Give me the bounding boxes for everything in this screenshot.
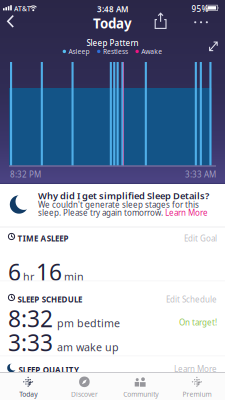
staticText: 95% — [191, 4, 208, 14]
staticText: Community — [123, 390, 158, 399]
button[interactable] — [0, 0, 22, 34]
button[interactable]: SLEEP QUALITY — [0, 361, 225, 375]
button[interactable] — [0, 0, 225, 34]
staticText: 8:32 — [8, 303, 53, 334]
staticText: Why did I get simplified Sleep Details? — [38, 189, 209, 202]
staticText: Awake — [141, 47, 162, 56]
staticText: sleep. Please try again tomorrow. — [38, 207, 165, 218]
button[interactable]: Edit Goal — [184, 233, 217, 244]
staticText: Sleep Pattern — [86, 37, 138, 48]
staticText: Discover — [71, 390, 98, 399]
button[interactable]: Why did I get simplified Sleep Details? — [0, 184, 225, 226]
staticText: Restless — [103, 47, 128, 56]
staticText: On target! — [179, 317, 217, 328]
staticText: Learn More — [165, 207, 208, 218]
staticText: We couldn't generate sleep stages for th… — [38, 199, 199, 210]
button[interactable]: Discover — [56, 373, 112, 400]
staticText: 6 — [8, 257, 21, 287]
staticText: SLEEP SCHEDULE — [17, 294, 82, 305]
staticText: 3:48 AM — [97, 4, 128, 14]
staticText: SLEEP QUALITY — [18, 364, 79, 375]
button[interactable] — [0, 0, 225, 60]
staticText: Edit Schedule — [166, 294, 217, 305]
staticText: am wake up — [57, 340, 119, 354]
staticText: 8:32 PM — [10, 169, 41, 180]
staticText: Learn More — [174, 363, 217, 374]
staticText: Asleep — [69, 47, 90, 56]
button[interactable] — [0, 0, 225, 34]
staticText: Today — [93, 14, 132, 32]
staticText: 3:33 — [8, 327, 53, 358]
button[interactable]: Premium — [169, 373, 225, 400]
button[interactable]: Today — [0, 373, 56, 400]
staticText: Premium — [182, 390, 211, 399]
staticText: pm bedtime — [57, 316, 120, 330]
staticText: TIME ASLEEP — [17, 233, 68, 244]
staticText: min — [64, 270, 84, 284]
button[interactable]: Edit Schedule — [166, 294, 217, 305]
staticText: Edit Goal — [184, 233, 217, 244]
staticText: 16 — [36, 257, 62, 287]
staticText: hr — [23, 270, 34, 284]
staticText: AT&T — [14, 4, 31, 13]
staticText: 3:33 AM — [185, 169, 216, 180]
staticText: Today — [19, 390, 37, 399]
button[interactable]: Community — [112, 373, 169, 400]
